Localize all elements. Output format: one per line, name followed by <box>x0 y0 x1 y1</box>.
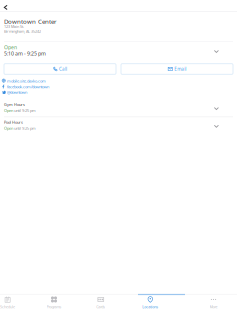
staticText: Gym Hours <box>4 102 25 107</box>
staticText: facebook.com/downtown <box>7 84 49 89</box>
staticText: until 9:25 pm <box>14 108 36 113</box>
button[interactable]: @downtown <box>0 90 110 95</box>
staticText: More <box>209 304 217 309</box>
button[interactable]: Open <box>0 42 237 61</box>
staticText: Downtown Center <box>4 17 57 25</box>
staticText: Pool Hours <box>4 120 23 125</box>
staticText: mobile-site.daxko.com <box>7 78 46 83</box>
button[interactable]: Locations <box>128 296 172 310</box>
staticText: Open <box>4 44 17 51</box>
button[interactable]: Email <box>121 64 233 74</box>
button[interactable]: Back <box>4 4 12 11</box>
staticText: Cards <box>96 304 105 309</box>
staticText: Locations <box>142 304 158 309</box>
staticText: Email <box>174 66 186 72</box>
staticText: Call <box>59 66 67 72</box>
button[interactable]: Gym Hours <box>0 100 237 116</box>
button[interactable]: More <box>191 296 235 310</box>
staticText: Open <box>4 108 13 113</box>
staticText: 5:10 am - 9:25 pm <box>4 50 46 57</box>
button[interactable]: Schedule <box>0 296 30 310</box>
staticText: until 9:25 pm <box>14 126 36 131</box>
button[interactable]: Programs <box>32 296 76 310</box>
staticText: Birmingham, AL 35242 <box>4 29 41 34</box>
button[interactable]: mobile-site.daxko.com <box>0 78 110 84</box>
staticText: Programs <box>46 304 61 309</box>
staticText: Schedule <box>0 304 15 309</box>
staticText: Open <box>4 126 13 131</box>
staticText: @downtown <box>7 90 27 95</box>
button[interactable]: Pool Hours <box>0 118 237 134</box>
staticText: 123 Main St. <box>4 24 24 29</box>
button[interactable]: facebook.com/downtown <box>0 84 110 90</box>
button[interactable]: Call <box>4 64 116 74</box>
button[interactable]: Cards <box>79 296 123 310</box>
